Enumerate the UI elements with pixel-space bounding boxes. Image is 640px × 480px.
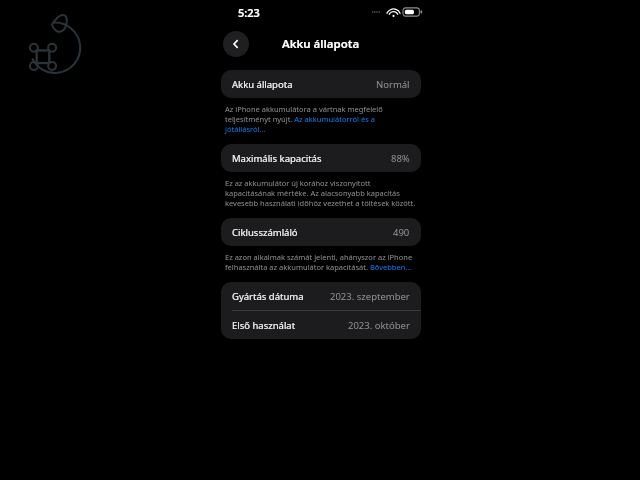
staticText: Ciklusszámláló — [232, 226, 298, 239]
staticText: Ez az akkumulátor új korához viszonyítot… — [225, 178, 417, 208]
button[interactable]: Maximális kapacitás — [221, 144, 421, 172]
button[interactable]: Akku állapota — [221, 70, 421, 98]
staticText: Az iPhone akkumulátora a várt­nak megfel… — [225, 104, 417, 134]
staticText: Akku állapota — [232, 78, 293, 91]
staticText: 2023. október — [348, 319, 410, 332]
staticText: Gyártás dátuma — [232, 290, 304, 303]
staticText: Maximális kapacitás — [232, 152, 322, 165]
button[interactable]: Akku állapota — [221, 70, 421, 98]
staticText: Normál — [376, 78, 410, 91]
staticText: 5:23 — [238, 5, 260, 20]
button[interactable]: Gyártás dátuma — [221, 282, 421, 310]
button[interactable]: Ciklusszámláló — [221, 218, 421, 246]
button[interactable]: Első használat — [221, 311, 421, 339]
button[interactable]: Ciklusszámláló — [221, 218, 421, 246]
staticText: 88% — [391, 152, 410, 165]
staticText: 490 — [393, 226, 410, 239]
staticText: Első használat — [232, 319, 296, 332]
staticText: 2023. szeptember — [330, 290, 410, 303]
button[interactable]: Vissza — [223, 31, 249, 57]
staticText: Akku állapota — [282, 36, 360, 52]
button[interactable]: Maximális kapacitás — [221, 144, 421, 172]
staticText: Ez azon alkalmak számát jelenti, ahánysz… — [225, 252, 417, 272]
